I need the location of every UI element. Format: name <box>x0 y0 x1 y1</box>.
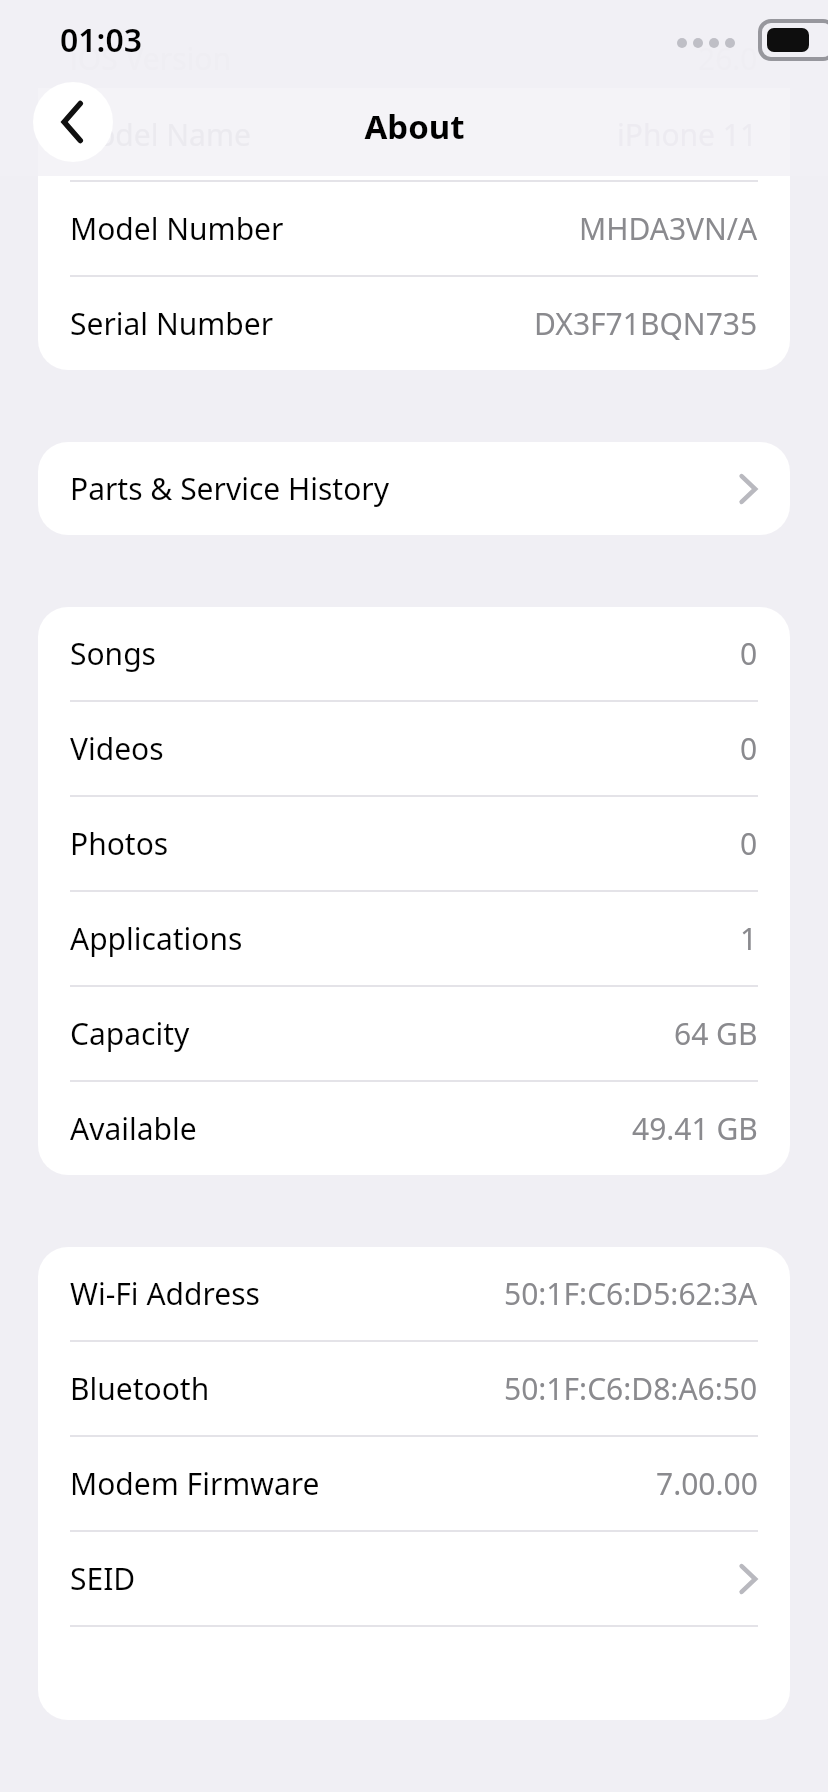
button[interactable]: Songs <box>38 607 790 700</box>
staticText: Serial Number <box>70 303 274 344</box>
staticText: Parts & Service History <box>70 468 390 509</box>
staticText: Applications <box>70 918 243 959</box>
button[interactable]: Bluetooth <box>38 1342 790 1435</box>
button[interactable]: Wi-Fi Address <box>38 1247 790 1340</box>
staticText: DX3F71BQN735 <box>534 303 758 344</box>
button[interactable]: Model Name <box>38 88 790 180</box>
staticText: 7.00.00 <box>656 1463 758 1504</box>
staticText: Model Name <box>70 114 251 155</box>
staticText: 0 <box>740 728 758 769</box>
staticText: MHDA3VN/A <box>579 208 758 249</box>
staticText: 01:03 <box>60 18 143 62</box>
button[interactable]: SEID <box>38 1532 790 1625</box>
staticText: 49.41 GB <box>632 1108 758 1149</box>
button[interactable]: Videos <box>38 702 790 795</box>
staticText: 0 <box>740 823 758 864</box>
staticText: Capacity <box>70 1013 190 1054</box>
button[interactable]: Available <box>38 1082 790 1175</box>
staticText: 64 GB <box>674 1013 758 1054</box>
staticText: Available <box>70 1108 197 1149</box>
staticText: About <box>364 104 465 149</box>
button[interactable]: Parts & Service History <box>38 442 790 535</box>
button[interactable]: Capacity <box>38 987 790 1080</box>
staticText: Bluetooth <box>70 1368 210 1409</box>
staticText: Photos <box>70 823 169 864</box>
button[interactable]: Modem Firmware <box>38 1437 790 1530</box>
staticText: Videos <box>70 728 164 769</box>
button[interactable]: Applications <box>38 892 790 985</box>
staticText: SEID <box>70 1558 136 1599</box>
button[interactable]: Serial Number <box>38 277 790 370</box>
staticText: Wi-Fi Address <box>70 1273 260 1314</box>
staticText: 0 <box>740 633 758 674</box>
staticText: Model Number <box>70 208 284 249</box>
button[interactable]: Photos <box>38 797 790 890</box>
staticText: 26.0 <box>698 38 758 79</box>
staticText: Modem Firmware <box>70 1463 320 1504</box>
button[interactable]: Model Number <box>38 182 790 275</box>
staticText: Songs <box>70 633 156 674</box>
staticText: 50:1F:C6:D5:62:3A <box>504 1273 758 1314</box>
staticText: 50:1F:C6:D8:A6:50 <box>504 1368 758 1409</box>
staticText: iOS Version <box>70 38 231 79</box>
button[interactable]: Back <box>33 82 113 162</box>
staticText: 1 <box>740 918 758 959</box>
